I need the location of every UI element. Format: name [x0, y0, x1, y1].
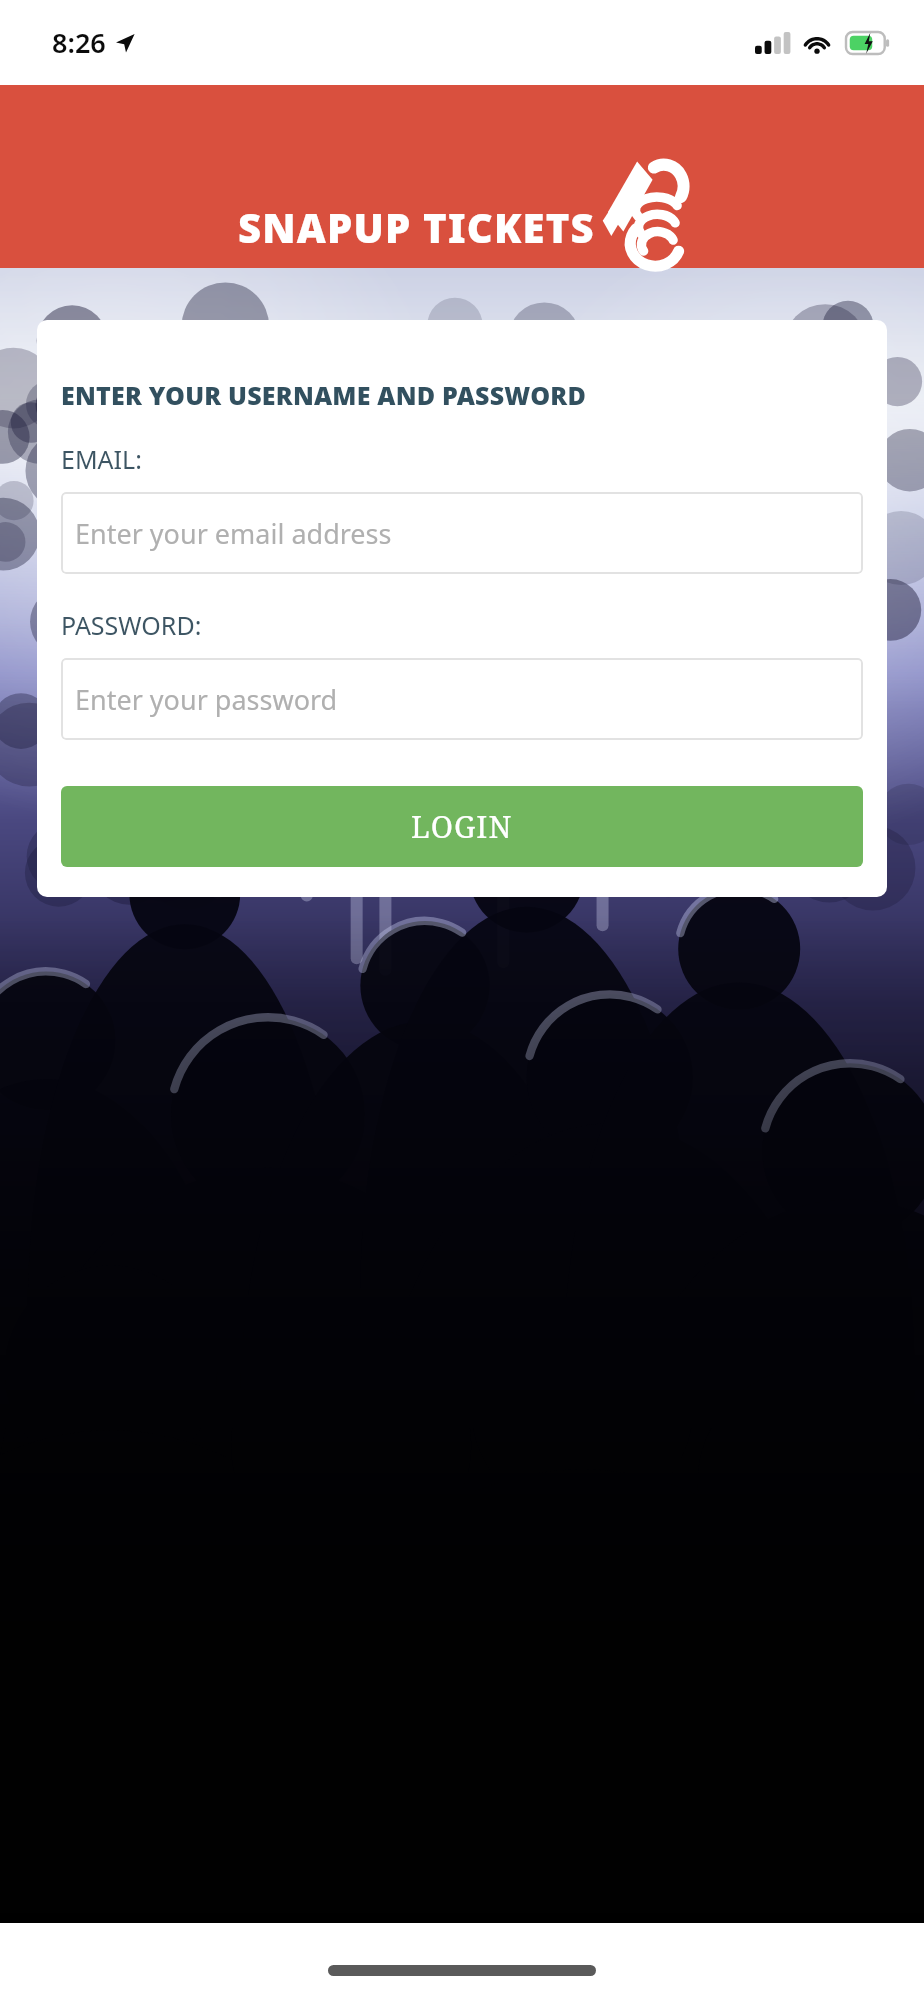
staticText: 8:26: [52, 24, 106, 61]
staticText: SNAPUP TICKETS: [238, 200, 595, 254]
staticText: LOGIN: [411, 806, 513, 847]
staticText: EMAIL:: [61, 442, 142, 476]
button[interactable]: Enter your password: [61, 658, 863, 740]
staticText: ENTER YOUR USERNAME AND PASSWORD: [61, 378, 587, 412]
button[interactable]: LOGIN: [61, 786, 863, 867]
staticText: Enter your email address: [75, 515, 392, 552]
staticText: PASSWORD:: [61, 608, 202, 642]
staticText: Enter your password: [75, 681, 338, 718]
button[interactable]: Enter your email address: [61, 492, 863, 574]
